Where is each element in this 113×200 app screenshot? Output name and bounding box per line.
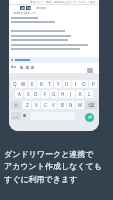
button[interactable]: P <box>89 80 97 88</box>
button[interactable]: O <box>80 80 88 88</box>
button[interactable]: U <box>63 80 71 88</box>
staticText: C <box>44 102 47 108</box>
staticText: M <box>78 102 83 108</box>
button[interactable]: B <box>58 101 66 109</box>
staticText: ?123 <box>13 115 19 118</box>
staticText: 報告 <box>21 7 25 10</box>
staticText: Y <box>57 81 60 87</box>
staticText: V <box>52 102 55 108</box>
button[interactable]: J <box>67 90 75 98</box>
button[interactable]: N <box>67 101 75 109</box>
button[interactable]: Z <box>23 101 31 109</box>
button[interactable]: ⇧ <box>11 101 21 109</box>
staticText: S <box>27 91 30 97</box>
staticText: O <box>82 81 86 87</box>
button[interactable]: T <box>45 80 53 88</box>
staticText: R <box>40 81 43 87</box>
staticText: J <box>70 91 72 97</box>
staticText: K <box>79 91 82 97</box>
staticText: Q <box>13 81 17 87</box>
staticText: E <box>31 81 34 87</box>
staticText: ⏎ <box>88 115 92 120</box>
staticText: F <box>44 91 47 97</box>
staticText: ⌫ <box>88 103 95 108</box>
staticText: T <box>48 81 51 87</box>
button[interactable]: G <box>50 90 58 98</box>
staticText: I <box>75 81 77 87</box>
button[interactable]: M <box>76 101 84 109</box>
button[interactable]: E <box>28 80 36 88</box>
button[interactable]: F <box>41 90 49 98</box>
staticText: P <box>92 81 95 87</box>
staticText: すぐに利用できます <box>4 174 78 184</box>
staticText: A <box>18 91 21 97</box>
button[interactable]: R <box>37 80 45 88</box>
button[interactable]: 報告 <box>20 6 25 10</box>
staticText: N <box>69 102 73 108</box>
staticText: B <box>61 102 64 108</box>
button[interactable]: ?123 <box>11 112 21 120</box>
staticText: Aa <box>11 64 17 70</box>
button[interactable]: K <box>76 90 84 98</box>
staticText: 受信トレイ｜題名・現場名を入力してください＜送信＞ <box>30 0 98 3</box>
button[interactable]: Q <box>11 80 19 88</box>
button[interactable]: S <box>24 90 32 98</box>
button[interactable]: C <box>41 101 49 109</box>
staticText: L <box>88 91 91 97</box>
button[interactable]: A <box>15 90 23 98</box>
button[interactable]: ⌫ <box>85 101 97 109</box>
button[interactable]: D <box>32 90 40 98</box>
button[interactable]: Y <box>54 80 62 88</box>
button[interactable]: H <box>59 90 67 98</box>
staticText: 「写真を登録した」 <box>11 11 39 15</box>
staticText: D <box>34 91 38 97</box>
staticText: ダンドリワークと連携で <box>4 149 94 159</box>
staticText: W <box>21 81 26 87</box>
staticText: X <box>35 102 38 108</box>
staticText: G <box>52 91 56 97</box>
staticText: 調査報告 <box>36 6 47 9</box>
button[interactable]: I <box>72 80 80 88</box>
button[interactable]: W <box>19 80 27 88</box>
staticText: ⇧ <box>14 103 18 108</box>
staticText: 写真 <box>27 7 31 10</box>
staticText: アカウント作成しなくても <box>4 161 102 171</box>
button[interactable]: 写真 <box>26 6 31 10</box>
button[interactable]: L <box>85 90 93 98</box>
button[interactable]: X <box>32 101 40 109</box>
staticText: H <box>61 91 65 97</box>
button[interactable]: ⏎ <box>85 113 94 122</box>
staticText: U <box>65 81 69 87</box>
button[interactable]: V <box>49 101 57 109</box>
staticText: Z <box>26 102 29 108</box>
